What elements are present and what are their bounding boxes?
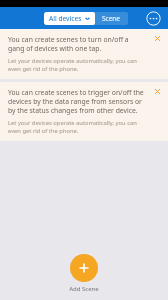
button[interactable]: All devices xyxy=(44,12,95,25)
staticText: Let your devices operate automatically, … xyxy=(8,119,146,135)
staticText: All devices xyxy=(49,14,82,23)
button[interactable]: You can create scenes to trigger on/off … xyxy=(0,82,168,141)
staticText: You can create scenes to turn on/off a g… xyxy=(8,35,146,53)
staticText: Let your devices operate automatically, … xyxy=(8,57,146,73)
staticText: You can create scenes to trigger on/off … xyxy=(8,88,146,115)
button[interactable]: Add Scene xyxy=(69,254,99,293)
button[interactable]: More options xyxy=(146,11,161,26)
staticText: Add Scene xyxy=(69,285,99,293)
button[interactable]: You can create scenes to turn on/off a g… xyxy=(0,29,168,79)
button[interactable]: Dismiss xyxy=(152,86,163,97)
button[interactable]: Dismiss xyxy=(152,33,163,44)
staticText: Scene xyxy=(102,14,121,23)
button[interactable]: Scene xyxy=(95,12,128,25)
